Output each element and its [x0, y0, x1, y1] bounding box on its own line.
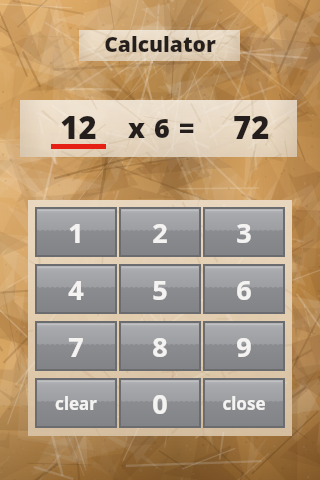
staticText: 7 — [68, 328, 84, 365]
button[interactable]: 0 — [120, 379, 200, 427]
staticText: 9 — [236, 328, 252, 365]
staticText: 2 — [152, 214, 168, 251]
button[interactable]: 8 — [120, 322, 200, 370]
button[interactable]: 3 — [204, 208, 284, 256]
staticText: 5 — [152, 271, 168, 308]
staticText: 4 — [68, 271, 84, 308]
button[interactable]: 5 — [120, 265, 200, 313]
staticText: 0 — [152, 385, 168, 422]
button[interactable]: clear — [36, 379, 116, 427]
staticText: close — [222, 392, 266, 415]
button[interactable]: 9 — [204, 322, 284, 370]
staticText: 8 — [152, 328, 168, 365]
staticText: Calculator — [104, 30, 216, 59]
button[interactable]: 12 — [20, 100, 297, 157]
button[interactable]: 2 — [120, 208, 200, 256]
button[interactable]: Calculator — [79, 30, 240, 61]
staticText: 6 — [236, 271, 252, 308]
staticText: x 6 = — [128, 109, 196, 146]
button[interactable]: close — [204, 379, 284, 427]
staticText: 12 — [60, 106, 97, 148]
staticText: clear — [55, 392, 97, 415]
staticText: 72 — [233, 106, 270, 148]
staticText: 3 — [236, 214, 252, 251]
button[interactable]: 6 — [204, 265, 284, 313]
button[interactable]: 4 — [36, 265, 116, 313]
button[interactable]: 1 — [36, 208, 116, 256]
staticText: 1 — [68, 214, 84, 251]
button[interactable]: 7 — [36, 322, 116, 370]
